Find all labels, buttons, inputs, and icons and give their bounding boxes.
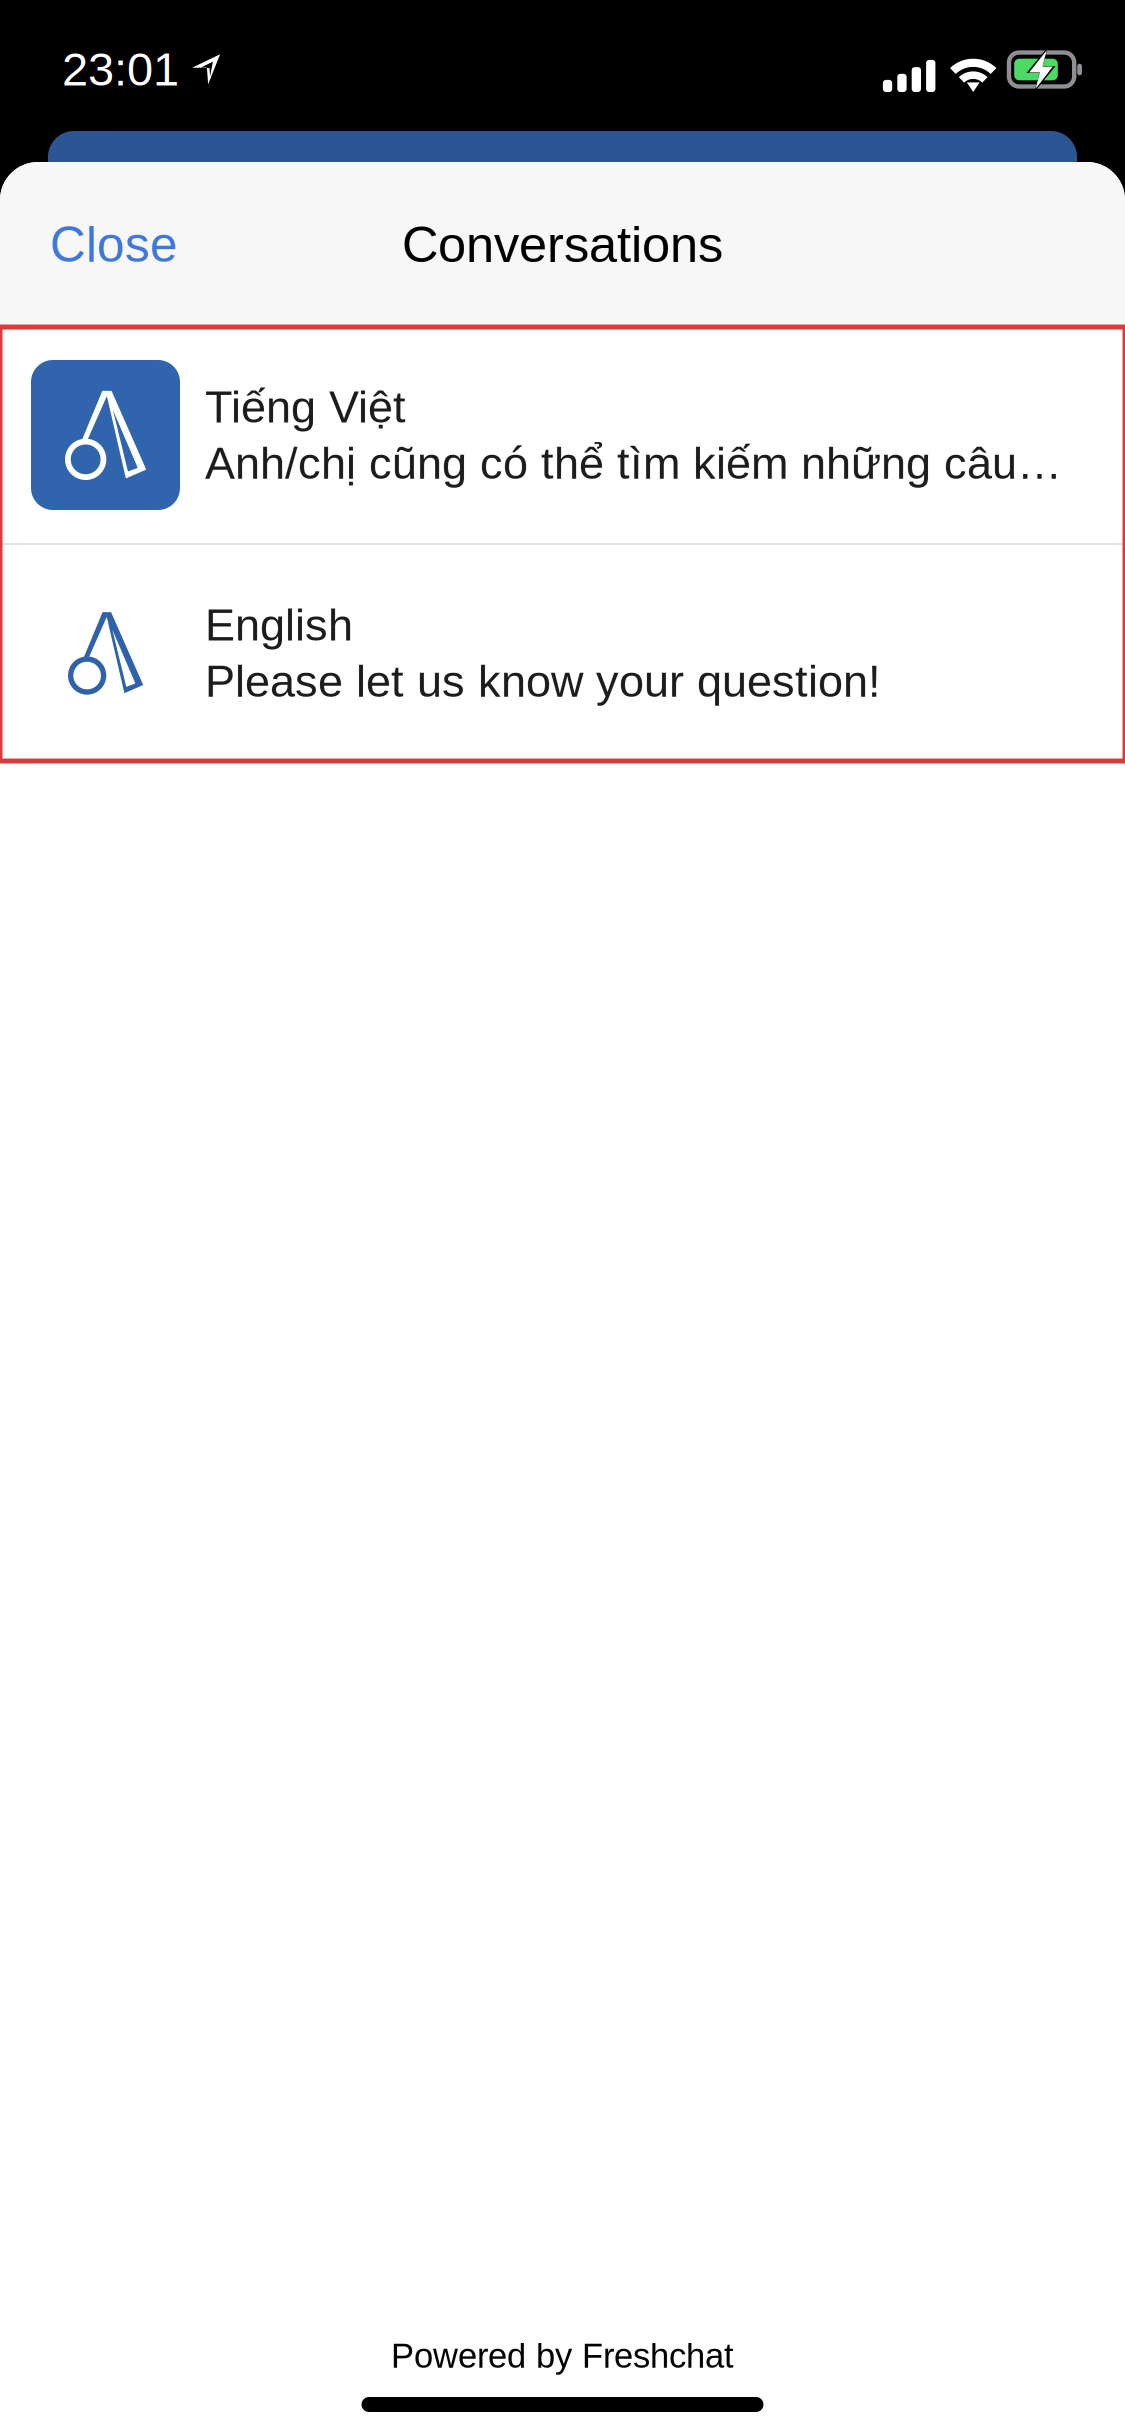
staticText: Anh/chị cũng có thể tìm kiếm những câu…: [205, 438, 1062, 488]
button[interactable]: English: [0, 545, 1125, 761]
staticText: Tiếng Việt: [205, 382, 406, 432]
staticText: Close: [50, 217, 178, 272]
staticText: Conversations: [402, 216, 723, 273]
staticText: English: [205, 600, 353, 650]
staticText: Powered by Freshchat: [391, 2336, 734, 2375]
button[interactable]: Tiếng Việt: [0, 327, 1125, 543]
staticText: Please let us know your question!: [205, 656, 881, 706]
staticText: 23:01: [62, 43, 179, 95]
button[interactable]: Close: [0, 191, 218, 298]
